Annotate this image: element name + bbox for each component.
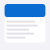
button[interactable]: Article summary	[5, 17, 45, 43]
button[interactable]: Featured banner	[5, 4, 45, 17]
